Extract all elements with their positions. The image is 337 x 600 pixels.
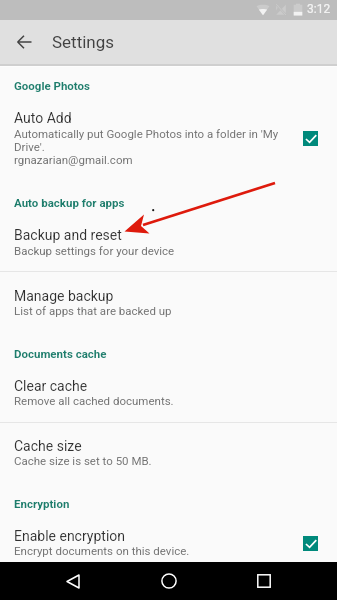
button[interactable] <box>0 518 337 556</box>
button[interactable]: Navigate up <box>2 20 46 64</box>
button[interactable]: Back <box>50 562 96 600</box>
staticText: Auto Add <box>14 110 72 126</box>
staticText: Backup and reset <box>14 227 122 243</box>
staticText: 3:12 <box>307 2 331 16</box>
staticText: Automatically put Google Photos into a f… <box>14 127 279 140</box>
staticText: rgnazarian@gmail.com <box>14 153 133 166</box>
staticText: Documents cache <box>14 347 107 360</box>
staticText: Google Photos <box>14 79 90 92</box>
button[interactable] <box>0 428 337 466</box>
button[interactable]: Toggle setting <box>303 536 318 551</box>
staticText: Encryption <box>14 497 70 510</box>
staticText: Encrypt documents on this device. <box>14 544 190 557</box>
button[interactable]: Recent apps <box>241 562 287 600</box>
staticText: Cache size is set to 50 MB. <box>14 454 152 467</box>
staticText: Drive'. <box>14 140 45 153</box>
staticText: Auto backup for apps <box>14 196 125 209</box>
staticText: Cache size <box>14 438 82 454</box>
button[interactable] <box>0 278 337 316</box>
staticText: List of apps that are backed up <box>14 304 172 317</box>
staticText: Enable encryption <box>14 528 126 544</box>
button[interactable] <box>0 100 337 165</box>
button[interactable] <box>0 368 337 406</box>
staticText: Backup settings for your device <box>14 244 175 257</box>
staticText: Manage backup <box>14 288 114 304</box>
button[interactable]: Toggle setting <box>303 131 318 146</box>
staticText: Settings <box>52 32 115 52</box>
button[interactable]: Home <box>146 562 192 600</box>
button[interactable] <box>0 217 337 256</box>
staticText: Remove all cached documents. <box>14 394 174 407</box>
staticText: Clear cache <box>14 378 88 394</box>
